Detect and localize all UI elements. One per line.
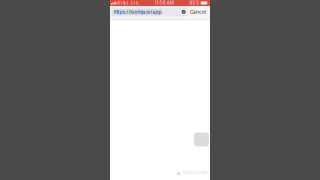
button[interactable]: https://loomja.io/app: [111, 7, 187, 16]
staticText: ×: [182, 9, 185, 15]
staticText: screen recorder: [182, 170, 208, 175]
staticText: Cancel: [190, 9, 206, 15]
staticText: https://loomja.io/app: [113, 9, 161, 15]
button[interactable]: Cancel: [190, 7, 206, 16]
staticText: 11:58 AM: [155, 0, 174, 6]
staticText: 85%: [190, 0, 200, 6]
staticText: AT&T LTE: [117, 0, 139, 6]
button[interactable]: AssistiveTouch: [194, 132, 209, 146]
